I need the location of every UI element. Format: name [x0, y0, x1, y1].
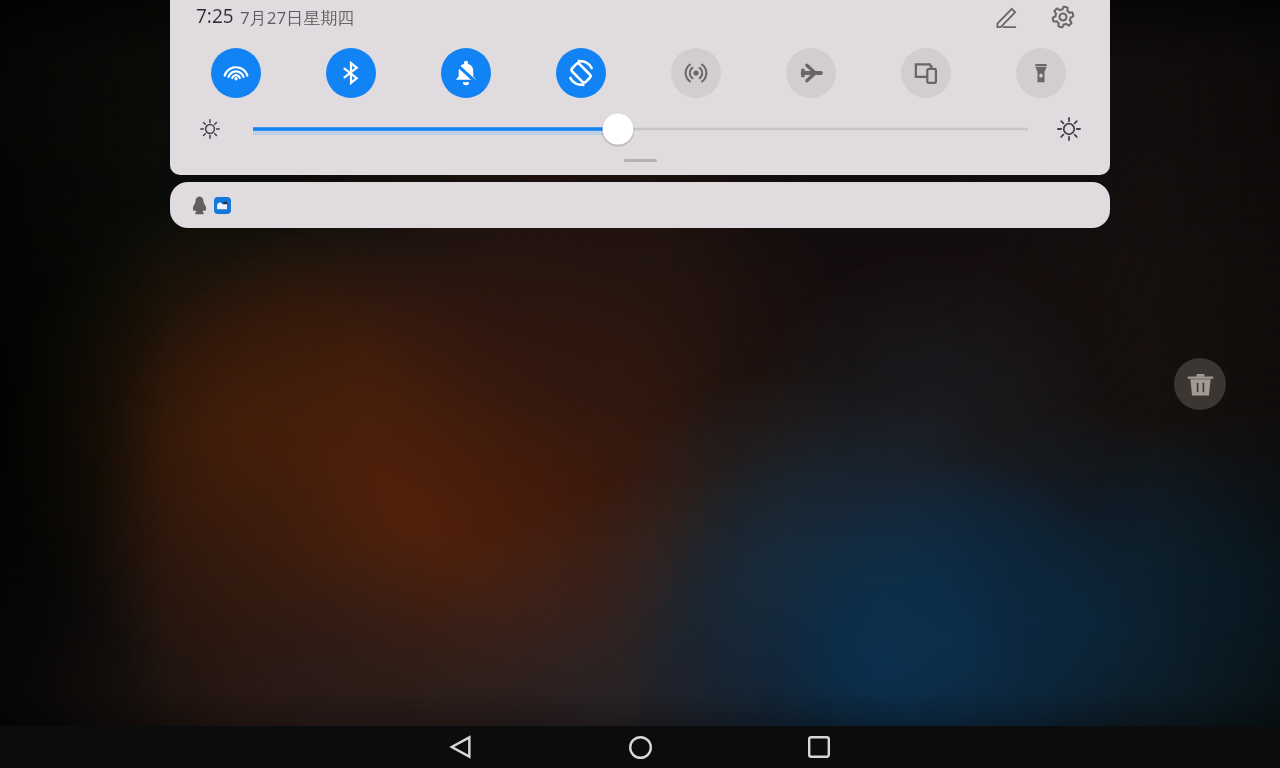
- button[interactable]: Home: [619, 726, 661, 768]
- staticText: 7:25: [196, 3, 234, 29]
- button[interactable]: Brightness: [253, 110, 1028, 148]
- button[interactable]: Edit: [985, 0, 1029, 39]
- button[interactable]: Cast: [901, 48, 951, 98]
- button[interactable]: Hotspot: [671, 48, 721, 98]
- button[interactable]: Recents: [798, 726, 840, 768]
- button[interactable]: Do not disturb: [441, 48, 491, 98]
- button[interactable]: Back: [440, 726, 482, 768]
- button[interactable]: Notifications: [170, 182, 1110, 228]
- button[interactable]: Auto-rotate: [556, 48, 606, 98]
- button[interactable]: Clear all: [1174, 358, 1226, 410]
- button[interactable]: Airplane mode: [786, 48, 836, 98]
- button[interactable]: Settings: [1041, 0, 1085, 39]
- staticText: 7月27日星期四: [240, 6, 355, 29]
- button[interactable]: Flashlight: [1016, 48, 1066, 98]
- button[interactable]: Bluetooth: [326, 48, 376, 98]
- button[interactable]: Wi-Fi: [211, 48, 261, 98]
